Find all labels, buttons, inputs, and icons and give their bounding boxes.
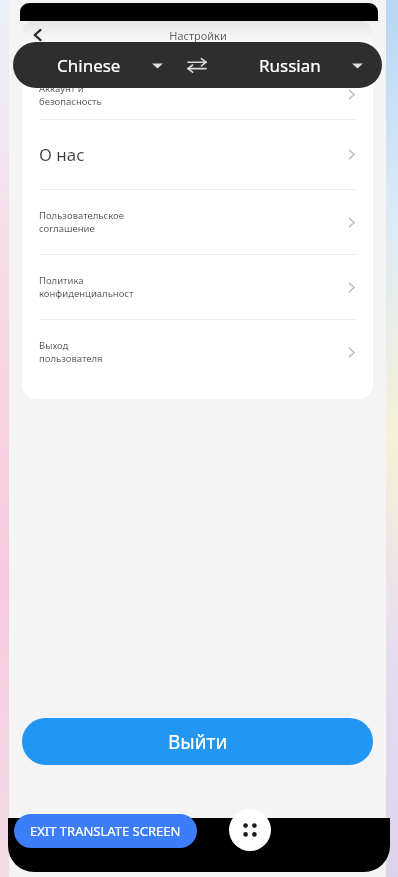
button[interactable]: Политика конфиденциальност	[22, 255, 373, 319]
staticText: Настройки	[169, 28, 227, 43]
button[interactable]: Swap languages	[182, 50, 212, 80]
button[interactable]: Выйти	[22, 718, 373, 765]
staticText: EXIT TRANSLATE SCREEN	[30, 822, 181, 840]
staticText: Аккаунт и безопасность	[39, 82, 345, 108]
button[interactable]: Пользовательское соглашение	[22, 190, 373, 254]
button[interactable]: О нас	[22, 120, 373, 189]
staticText: О нас	[39, 143, 345, 166]
staticText: Политика конфиденциальност	[39, 274, 345, 300]
button[interactable]: Russian	[259, 54, 364, 77]
button[interactable]: EXIT TRANSLATE SCREEN	[30, 814, 181, 848]
button[interactable]: Выход пользователя	[22, 320, 373, 384]
staticText: Russian	[259, 54, 321, 77]
staticText: Пользовательское соглашение	[39, 209, 345, 235]
button[interactable]: Chinese	[57, 54, 164, 77]
button[interactable]: Back	[21, 20, 55, 50]
staticText: Выход пользователя	[39, 339, 345, 365]
staticText: Chinese	[57, 54, 121, 77]
button[interactable]: Accessibility menu	[229, 809, 271, 851]
button[interactable]: Аккаунт и безопасность	[22, 70, 373, 119]
staticText: Выйти	[168, 729, 228, 755]
